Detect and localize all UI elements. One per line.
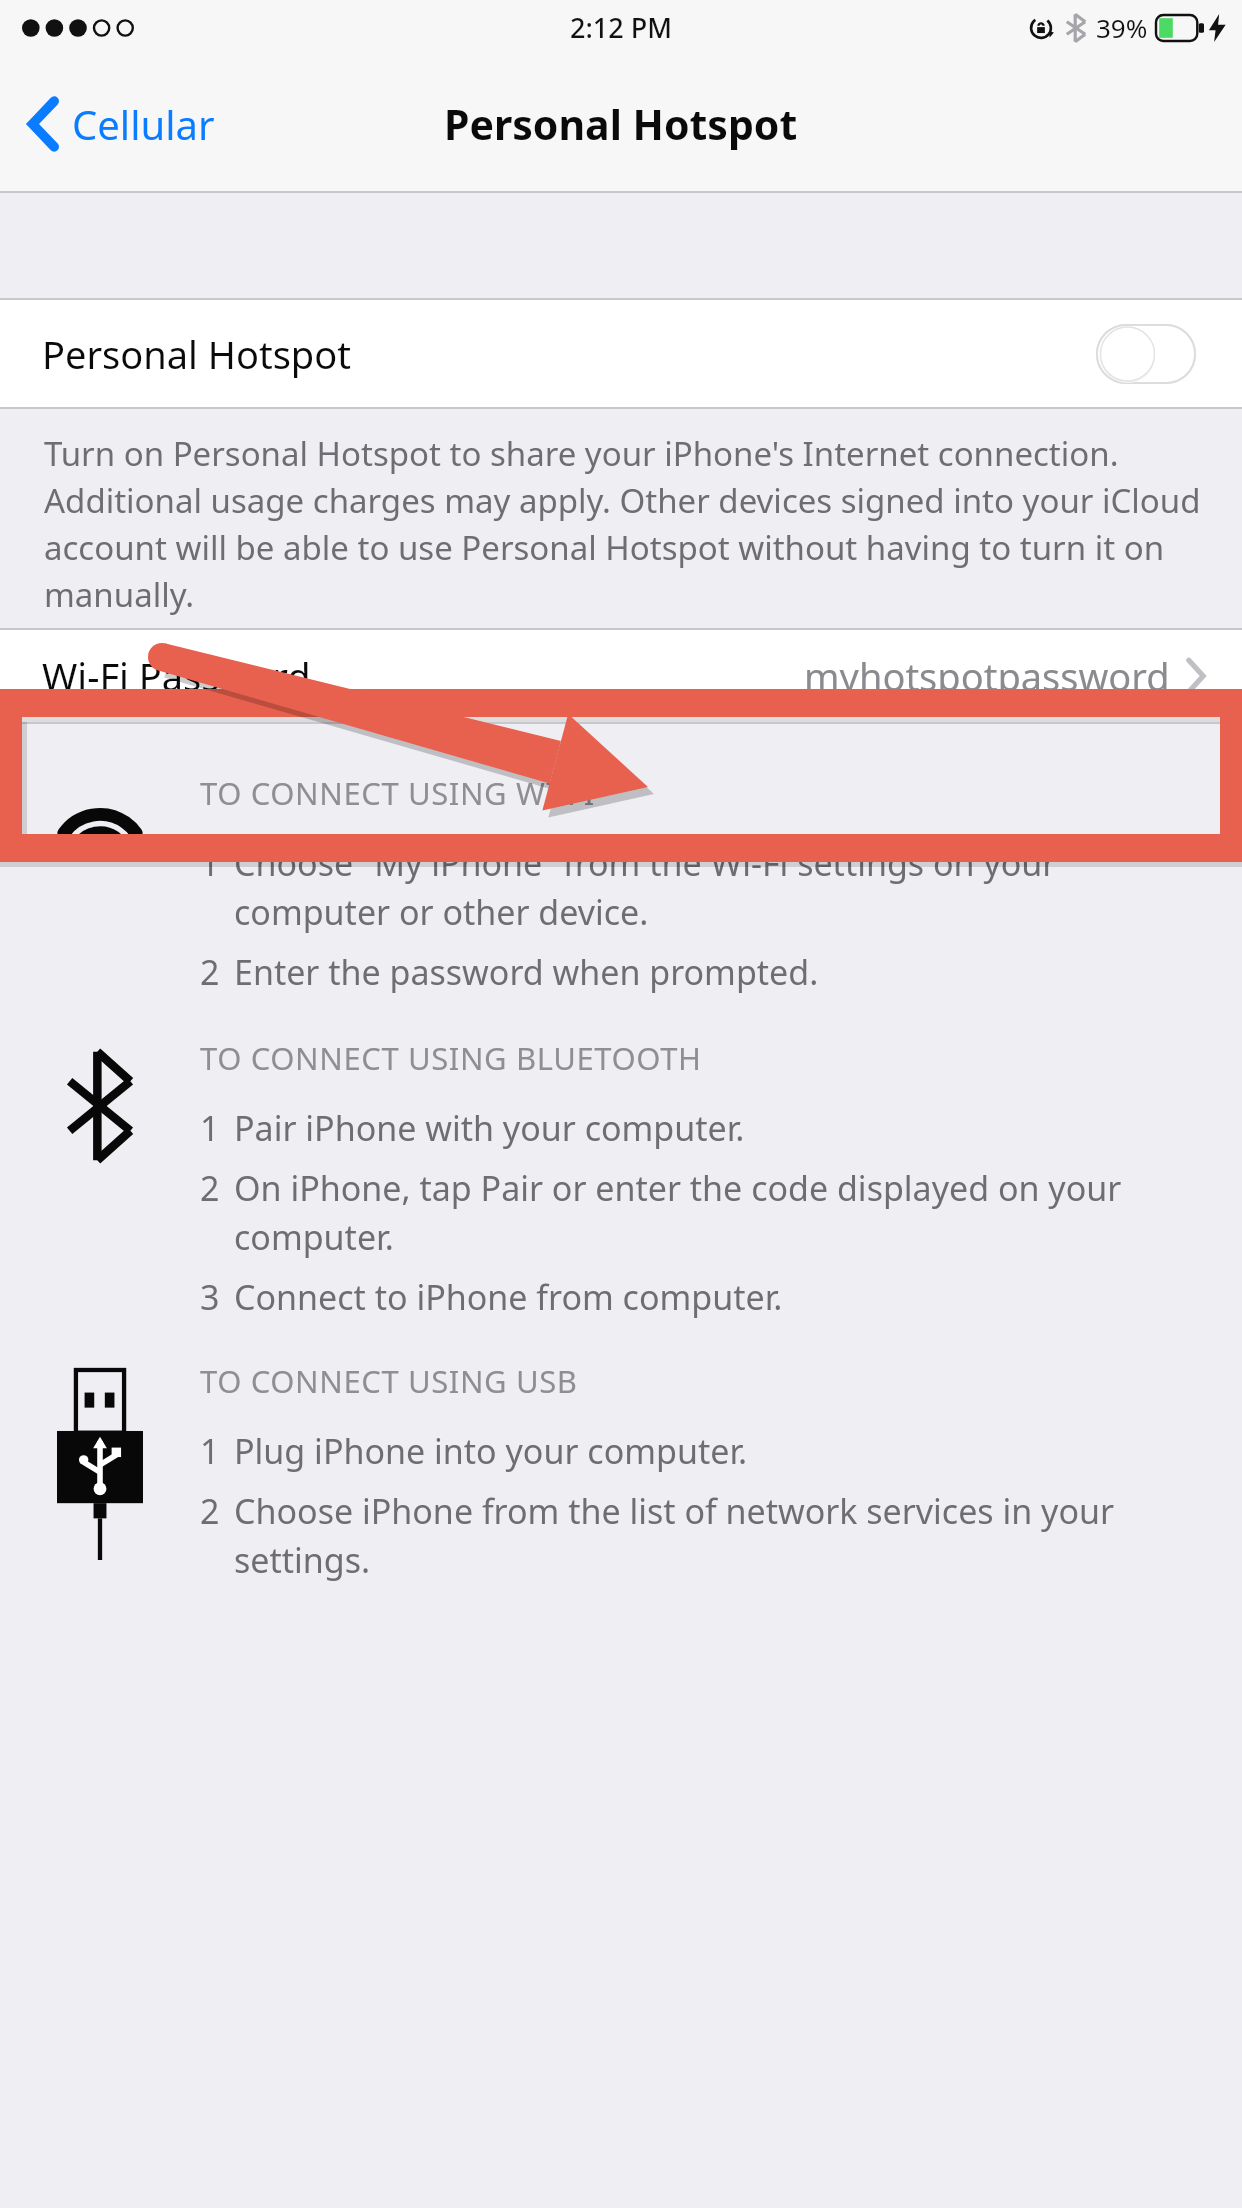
staticText: 2 xyxy=(200,1165,220,1211)
staticText: Enter the password when prompted. xyxy=(234,949,819,995)
staticText: Wi-Fi Password xyxy=(42,650,311,702)
staticText: 2:12 PM xyxy=(570,9,672,46)
staticText: TO CONNECT USING USB xyxy=(200,1360,578,1402)
staticText: 3 xyxy=(200,1274,220,1320)
staticText: Personal Hotspot xyxy=(444,96,798,152)
staticText: Pair iPhone with your computer. xyxy=(234,1105,745,1151)
button[interactable]: Personal Hotspot xyxy=(0,300,1242,407)
button[interactable]: Wi-Fi Password xyxy=(0,630,1242,722)
staticText: 1 xyxy=(200,1105,220,1151)
staticText: myhotspotpassword xyxy=(804,650,1170,702)
staticText: 2 xyxy=(200,1488,220,1534)
staticText: 2 xyxy=(200,949,220,995)
staticText: TO CONNECT USING WI-FI xyxy=(200,772,595,814)
staticText: Choose iPhone from the list of network s… xyxy=(234,1488,1198,1583)
staticText: Plug iPhone into your computer. xyxy=(234,1428,748,1474)
staticText: Choose “My iPhone” from the Wi-Fi settin… xyxy=(234,840,1198,935)
button[interactable]: Personal Hotspot toggle xyxy=(1096,324,1196,384)
staticText: Connect to iPhone from computer. xyxy=(234,1274,783,1320)
button[interactable]: Cellular xyxy=(0,87,233,161)
staticText: On iPhone, tap Pair or enter the code di… xyxy=(234,1165,1198,1260)
staticText: 1 xyxy=(200,1428,220,1474)
staticText: Turn on Personal Hotspot to share your i… xyxy=(44,431,1204,617)
staticText: Personal Hotspot xyxy=(42,328,351,380)
staticText: 1 xyxy=(200,840,220,886)
staticText: TO CONNECT USING BLUETOOTH xyxy=(200,1037,702,1079)
staticText: 39% xyxy=(1096,10,1148,45)
staticText: Cellular xyxy=(72,97,215,151)
